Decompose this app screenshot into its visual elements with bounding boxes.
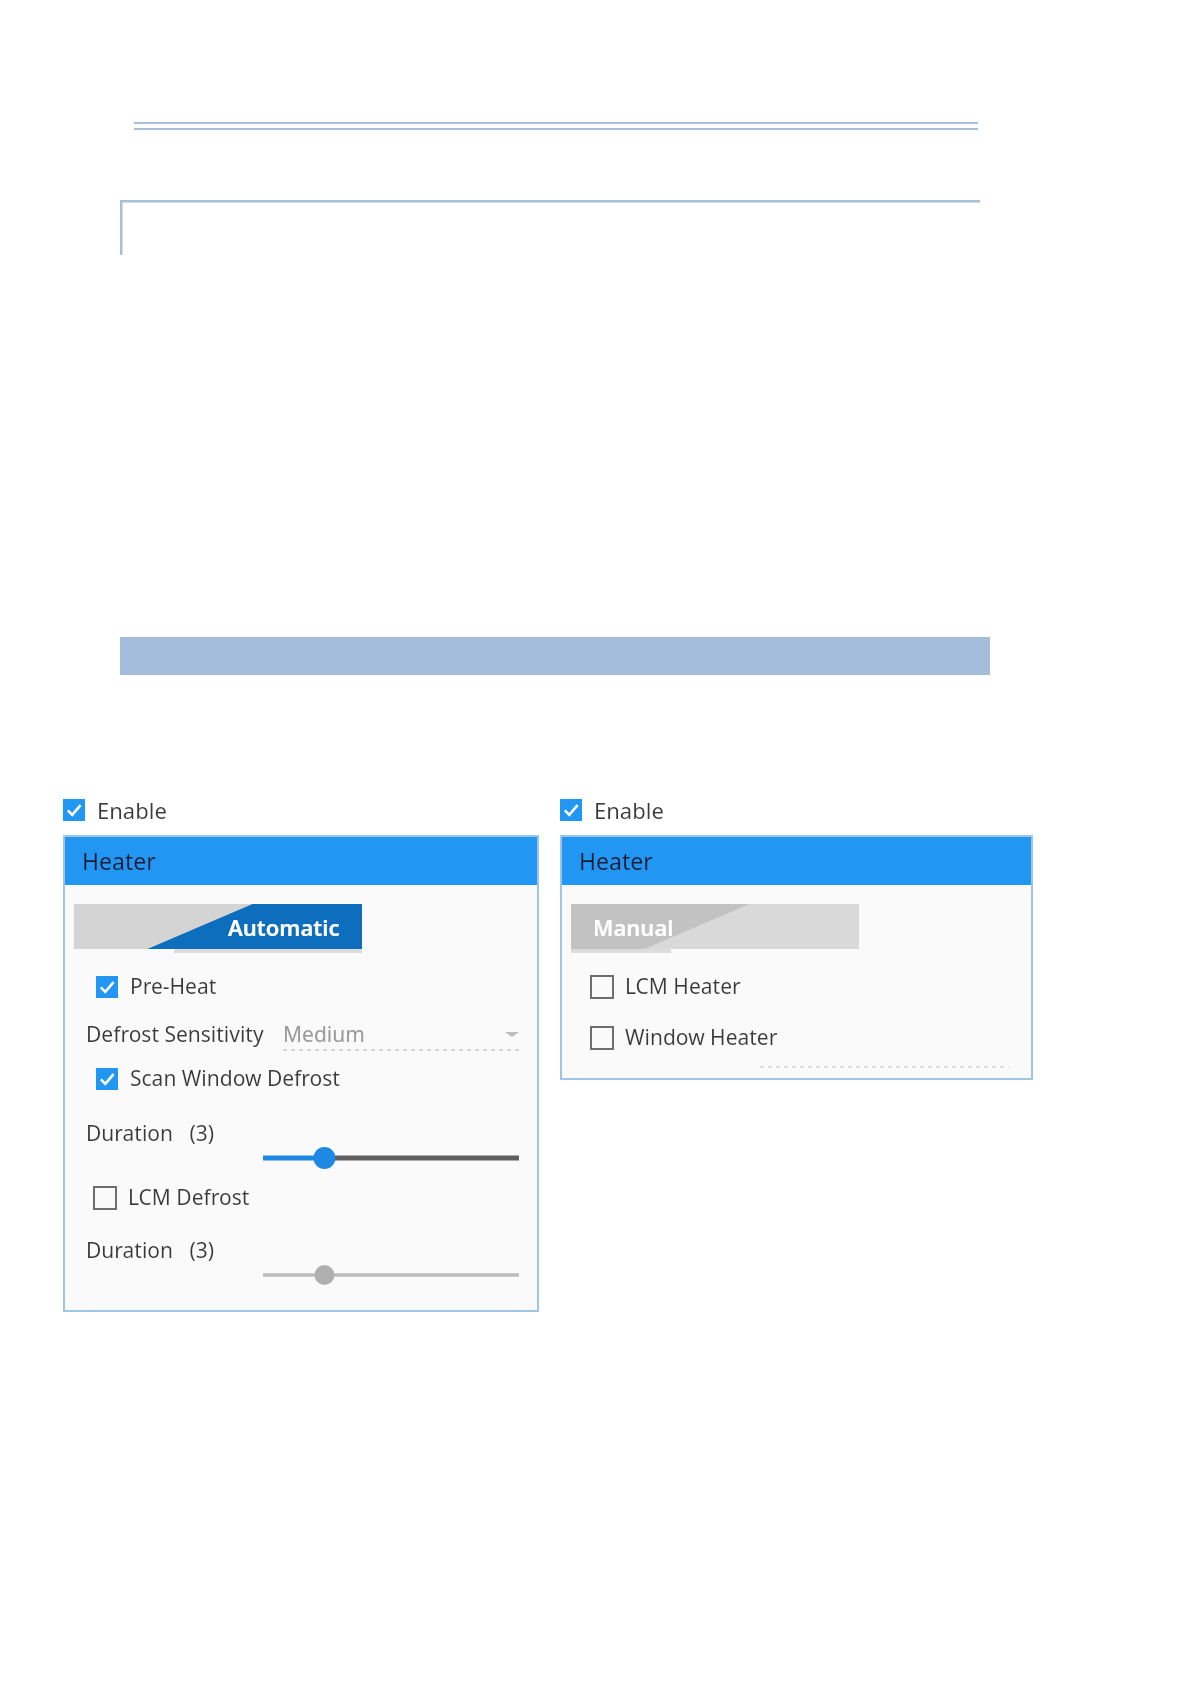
staticText: Duration (3) — [86, 1236, 215, 1265]
button[interactable]: Scan Window Defrost — [96, 1062, 340, 1095]
button[interactable]: Enable — [63, 793, 167, 827]
button[interactable]: Automatic — [74, 904, 362, 949]
button[interactable]: Enable — [560, 793, 664, 827]
staticText: Heater — [579, 845, 653, 876]
button[interactable]: Duration slider — [263, 1262, 519, 1288]
staticText: Medium — [283, 1020, 365, 1049]
button[interactable]: Pre-Heat — [96, 970, 217, 1003]
staticText: Enable — [594, 795, 664, 825]
button[interactable]: Medium — [283, 1017, 519, 1051]
staticText: Pre-Heat — [130, 972, 217, 1001]
staticText: Manual — [593, 912, 674, 942]
button[interactable]: Heater — [63, 835, 539, 885]
staticText: Heater — [82, 845, 156, 876]
staticText: LCM Heater — [625, 972, 741, 1001]
staticText: Window Heater — [625, 1023, 778, 1052]
button[interactable]: Manual — [571, 904, 859, 949]
button[interactable]: Window Heater — [591, 1021, 778, 1054]
staticText: Automatic — [228, 912, 340, 942]
staticText: LCM Defrost — [128, 1183, 250, 1212]
button[interactable]: LCM Defrost — [94, 1181, 250, 1214]
staticText: Duration (3) — [86, 1119, 215, 1148]
staticText: Defrost Sensitivity — [86, 1020, 264, 1049]
button[interactable]: LCM Heater — [591, 970, 741, 1003]
staticText: Enable — [97, 795, 167, 825]
button[interactable]: Duration slider — [263, 1145, 519, 1171]
button[interactable]: Heater — [560, 835, 1033, 885]
staticText: Scan Window Defrost — [130, 1064, 340, 1093]
